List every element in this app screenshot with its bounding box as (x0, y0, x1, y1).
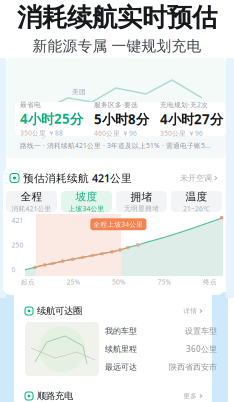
staticText: 消耗421公里 (11, 204, 51, 213)
staticText: 4小时25分 (20, 110, 83, 127)
staticText: 421 (11, 216, 23, 225)
button[interactable]: 温度 (171, 191, 222, 212)
staticText: 服务区多·要选 (94, 100, 138, 109)
staticText: 更多 (183, 392, 197, 400)
staticText: 360公里 (186, 344, 217, 354)
staticText: 350公里 (20, 128, 46, 137)
staticText: 250 (11, 241, 23, 249)
staticText: 美团 (72, 88, 86, 96)
staticText: 最省电 (20, 101, 41, 109)
staticText: 设置车型 (185, 326, 217, 336)
staticText: 4小时27分 (160, 110, 223, 128)
staticText: 上坡34公里 (68, 204, 104, 213)
staticText: 充电规划·充2次 (160, 100, 208, 109)
button[interactable]: 全程 (6, 191, 57, 212)
staticText: 350公里 (160, 129, 186, 138)
button[interactable]: 续航里程 (105, 340, 217, 358)
button[interactable]: 坡度 (61, 191, 112, 212)
staticText: 全程上坡34公里 (93, 220, 143, 229)
staticText: ￥96 (122, 129, 137, 138)
staticText: 消耗续航实时预估 (17, 2, 217, 33)
staticText: 陕西省西安市 (169, 362, 217, 372)
staticText: 我的车型 (105, 326, 137, 336)
staticText: 无明显拥堵 (124, 204, 159, 213)
staticText: 预估消耗续航 421公里 (23, 171, 132, 185)
staticText: 续航可达圈 (37, 305, 82, 317)
staticText: ￥96 (188, 129, 203, 138)
staticText: 5小时8分 (94, 110, 149, 128)
staticText: 起点 (21, 278, 35, 286)
staticText: 坡度 (75, 190, 97, 203)
staticText: 未开空调 (180, 173, 212, 183)
button[interactable]: 未开空调 (180, 173, 218, 183)
staticText: ￥88 (48, 128, 63, 137)
button[interactable]: 更多 (183, 392, 203, 400)
staticText: 75% (157, 278, 171, 286)
staticText: 21~26℃ (183, 204, 210, 213)
staticText: 最远可达 (105, 362, 137, 372)
button[interactable]: 我的车型 (105, 322, 217, 340)
button[interactable]: 最远可达 (105, 358, 217, 376)
staticText: 460公里 (94, 129, 120, 138)
staticText: 续航里程 (105, 344, 137, 354)
staticText: 拥堵 (130, 190, 152, 203)
staticText: 50% (112, 278, 126, 286)
staticText: 0 (11, 265, 15, 274)
button[interactable]: 充电规划·充2次 (160, 103, 226, 134)
button[interactable]: 服务区多·要选 (94, 103, 160, 134)
staticText: 顺路充电 (37, 390, 73, 402)
staticText: 终点 (203, 278, 217, 286)
button[interactable]: 拥堵 (116, 191, 167, 212)
staticText: 详情 (183, 307, 197, 315)
staticText: 路线一 · 消耗续航421公里 · 3年道及以上51% · 需通电子账5... (20, 141, 211, 150)
staticText: 全程 (20, 190, 42, 203)
staticText: 温度 (185, 190, 207, 203)
staticText: 新能源专属 一键规划充电 (32, 37, 201, 55)
staticText: 25% (66, 278, 80, 286)
button[interactable]: 详情 (183, 307, 203, 315)
button[interactable]: 最省电 (20, 103, 94, 134)
